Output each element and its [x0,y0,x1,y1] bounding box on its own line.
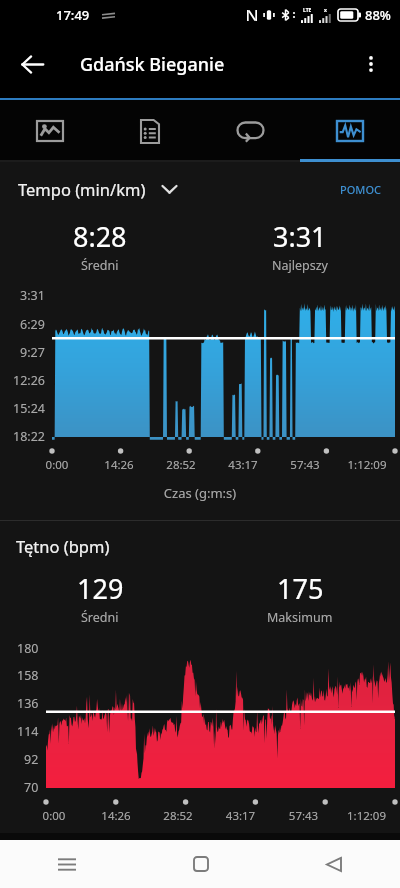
staticText: Średni [81,609,119,626]
staticText: 158 [17,667,39,684]
staticText: Czas (g:m:s) [0,484,400,502]
staticText: 17:49 [56,6,90,24]
staticText: 0:00 [26,457,88,473]
staticText: 1:12:09 [336,457,398,473]
staticText: Gdańsk Bieganie [80,52,225,77]
staticText: 14:26 [88,457,150,473]
staticText: 3:31 [273,218,327,255]
staticText: Średni [81,257,119,274]
staticText: 3:31 [20,287,45,304]
button[interactable]: POMOC [334,176,388,203]
staticText: 92 [24,751,39,768]
staticText: 43:17 [212,457,274,473]
staticText: 88% [365,6,391,24]
staticText: 70 [24,779,39,796]
staticText: Tempo (min/km) [18,178,146,200]
staticText: 6:29 [20,316,45,333]
staticText: 8:28 [73,218,127,255]
staticText: 43:17 [209,808,272,824]
button[interactable]: Recent apps [0,840,134,888]
button[interactable]: Map [0,100,100,162]
button[interactable]: Charts [300,100,400,162]
staticText: 175 [277,570,324,607]
staticText: 15:24 [13,400,45,417]
staticText: 57:43 [272,808,335,824]
staticText: 114 [17,723,39,740]
staticText: 14:26 [85,808,147,824]
staticText: Najlepszy [272,257,328,274]
button[interactable]: Details [100,100,200,162]
staticText: 129 [77,570,124,607]
staticText: 136 [17,695,39,712]
staticText: 1:12:09 [335,808,398,824]
staticText: 18:22 [13,428,45,445]
staticText: Tętno (bpm) [16,535,110,557]
staticText: Maksimum [267,609,333,626]
button[interactable]: Back [8,40,56,88]
staticText: x [324,7,327,14]
button[interactable]: More options [347,40,395,88]
button[interactable]: Laps [200,100,300,162]
staticText: 9:27 [20,344,45,361]
staticText: 28:52 [147,808,209,824]
button[interactable]: Tempo (min/km) [16,174,179,204]
staticText: LTE [303,7,312,14]
button[interactable]: Home [134,840,267,888]
button[interactable]: Back [267,840,400,888]
staticText: POMOC [340,182,382,197]
staticText: 57:43 [274,457,336,473]
staticText: 180 [17,640,39,657]
staticText: 12:26 [13,372,45,389]
staticText: 28:52 [150,457,212,473]
staticText: 0:00 [23,808,85,824]
